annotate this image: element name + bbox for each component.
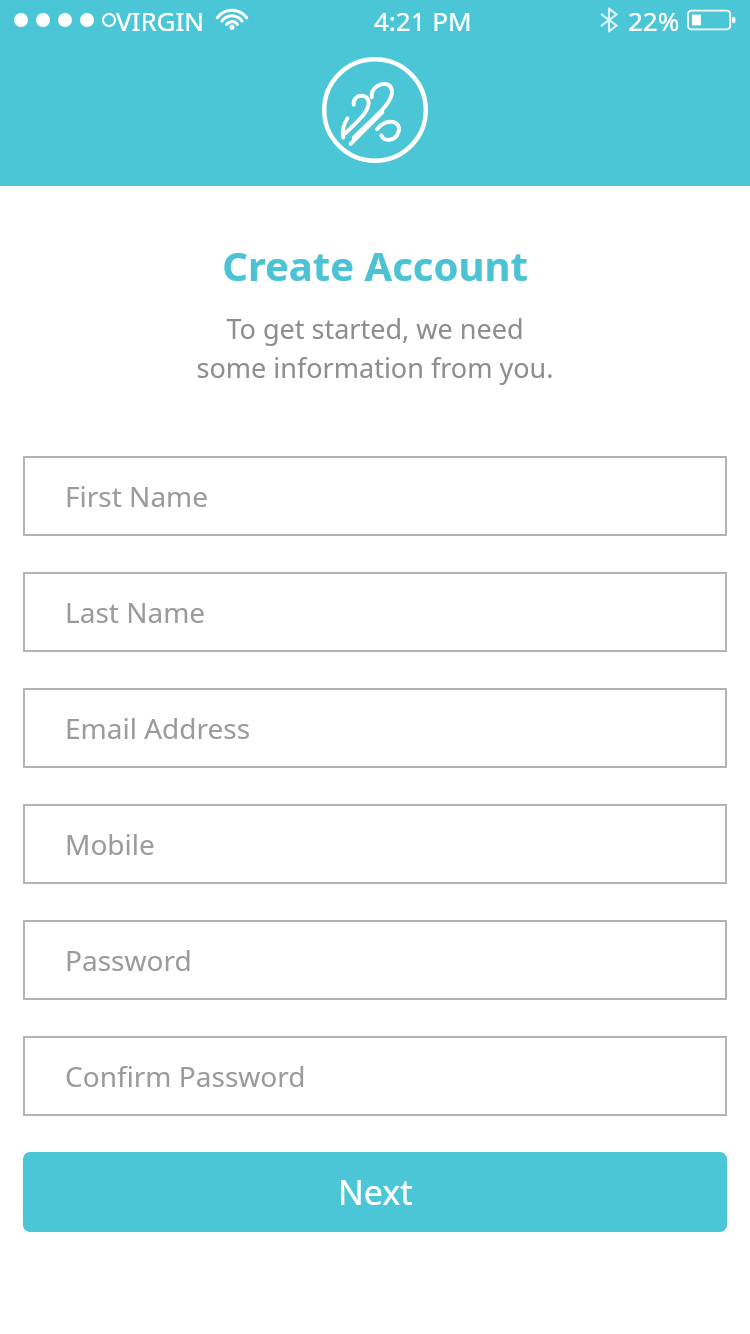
button[interactable]: Confirm Password [23,1036,727,1116]
button[interactable]: Last Name [23,572,727,652]
staticText: To get started, we need some information… [0,310,750,386]
staticText: Email Address [65,709,251,747]
button[interactable]: Next [23,1152,727,1232]
staticText: First Name [65,477,209,515]
staticText: Next [338,1169,413,1215]
button[interactable]: Password [23,920,727,1000]
staticText: Password [65,941,192,979]
staticText: VIRGIN [116,3,205,38]
other: App logo [322,57,428,163]
staticText: Last Name [65,593,206,631]
staticText: Mobile [65,825,155,863]
button[interactable]: Mobile [23,804,727,884]
staticText: 4:21 PM [374,3,472,38]
staticText: 22% [628,3,680,38]
button[interactable]: Email Address [23,688,727,768]
staticText: Confirm Password [65,1057,306,1095]
staticText: Create Account [0,238,750,292]
button[interactable]: First Name [23,456,727,536]
